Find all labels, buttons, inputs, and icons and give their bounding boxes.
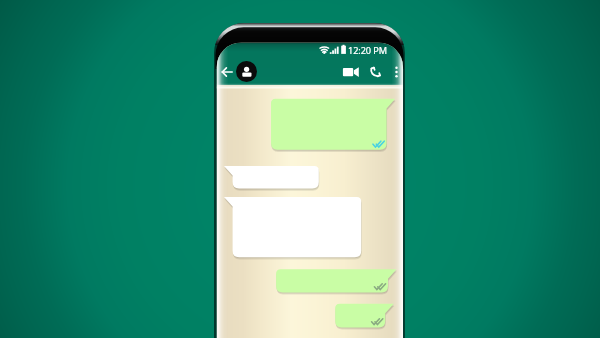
button[interactable]: Message <box>335 304 385 328</box>
button[interactable]: Back <box>218 62 238 82</box>
staticText: 12:20 PM <box>348 44 387 57</box>
button[interactable]: Message <box>233 166 319 189</box>
button[interactable]: Voice call <box>366 62 387 82</box>
button[interactable]: More options <box>390 62 403 82</box>
button[interactable]: Contact profile <box>236 61 257 82</box>
button[interactable]: Message <box>271 99 387 150</box>
button[interactable]: Video call <box>339 62 363 82</box>
button[interactable]: Message <box>276 269 388 292</box>
button[interactable]: Message <box>233 197 362 257</box>
